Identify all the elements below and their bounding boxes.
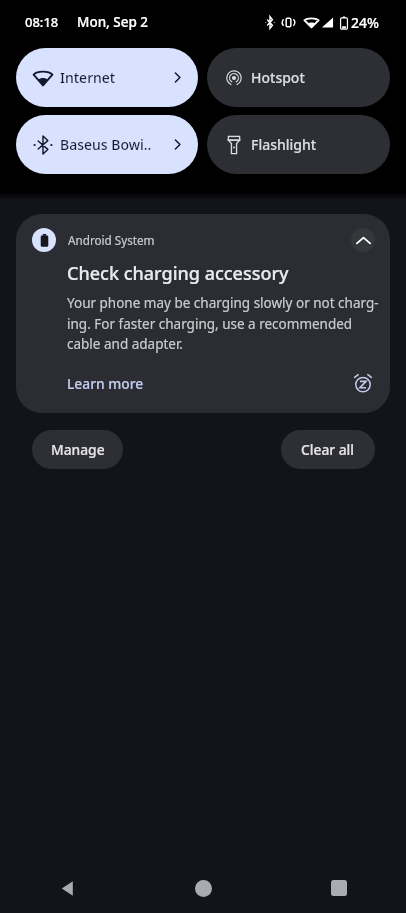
staticText: Check charging accessory [67,261,289,286]
button[interactable]: Android System [16,214,390,413]
button[interactable]: Home [135,863,271,913]
staticText: Baseus Bowi.. [60,135,152,154]
button[interactable]: Hotspot [207,48,390,107]
button[interactable]: Snooze [351,371,375,395]
staticText: Flashlight [251,135,317,154]
button[interactable]: Recents [271,863,406,913]
button[interactable]: Baseus Bowi.. [16,115,198,174]
staticText: Clear all [301,440,355,459]
staticText: Hotspot [251,68,305,87]
staticText: Android System [68,232,155,248]
staticText: 24% [351,13,379,32]
button[interactable]: Learn more [67,374,144,393]
staticText: Your phone may be charging slowly or not… [67,294,379,353]
staticText: Manage [51,440,105,459]
staticText: Mon, Sep 2 [77,13,149,31]
staticText: 08:18 [25,13,59,31]
button[interactable]: Collapse [351,228,375,252]
staticText: Internet [60,68,116,87]
button[interactable]: Clear all [281,430,375,469]
button[interactable]: Manage [32,430,123,469]
button[interactable]: Back [0,863,135,913]
button[interactable]: Flashlight [207,115,390,174]
button[interactable]: Internet [16,48,198,107]
